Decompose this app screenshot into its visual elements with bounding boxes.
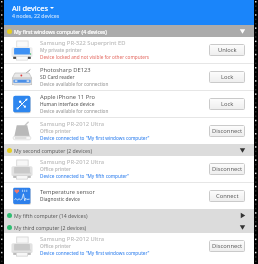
staticText: Photosharp DE123 [40,66,91,74]
staticText: My fifth computer (14 devices) [14,212,88,219]
button[interactable]: Photosharp DE123 [0,64,258,90]
staticText: Lock [221,100,234,108]
button[interactable]: Samsung PR-2012 Ultra [0,233,258,259]
staticText: Apple iPhone 11 Pro [40,93,95,101]
staticText: Office printer [40,166,71,173]
staticText: Diagnostic device [40,196,81,203]
staticText: Disconnect [212,165,243,173]
staticText: Disconnect [212,127,243,135]
button[interactable]: My first windows computer (4 devices) [0,25,258,37]
staticText: Temperature sensor [40,188,95,196]
staticText: Lock [221,73,234,81]
staticText: Samsung PR-322 Superprint ED [40,39,126,47]
button[interactable]: Disconnect [209,125,245,137]
button[interactable]: My third computer (2 devices) [0,221,258,233]
staticText: All devices [12,3,48,13]
staticText: Device available for connection [40,108,109,114]
staticText: Unlock [218,46,237,54]
button[interactable]: Apple iPhone 11 Pro [0,91,258,117]
staticText: Disconnect [212,242,243,250]
button[interactable]: My fifth computer (14 devices) [0,209,258,221]
staticText: Device connected to "My first windows co… [40,250,150,256]
staticText: Device locked and not visible for other … [40,54,150,60]
staticText: Device connected to "My first windows co… [40,135,150,141]
button[interactable]: My second computer (2 devices) [0,144,258,156]
button[interactable]: Lock [209,71,245,83]
staticText: My second computer (2 devices) [14,147,92,154]
staticText: Office printer [40,128,71,135]
button[interactable]: Disconnect [209,240,245,252]
button[interactable]: Samsung PR-2012 Ultra [0,118,258,144]
staticText: Samsung PR-2012 Ultra [40,120,104,128]
button[interactable]: Samsung PR-2012 Ultra [0,156,258,182]
staticText: Human interface device [40,101,95,108]
staticText: My private printer [40,47,82,54]
button[interactable]: Connect [209,190,245,202]
staticText: SD Card reader [40,74,75,81]
button[interactable]: Samsung PR-322 Superprint ED [0,37,258,63]
staticText: 4 nodes, 22 devices [12,12,60,19]
button[interactable]: Temperature sensor [0,183,258,209]
staticText: Device available for connection [40,81,109,87]
staticText: Device connected to "My fifth computer" [40,173,130,179]
button[interactable]: Lock [209,98,245,110]
staticText: My first windows computer (4 devices) [14,28,107,35]
staticText: Samsung PR-2012 Ultra [40,158,104,166]
staticText: Connect [216,192,239,200]
staticText: Samsung PR-2012 Ultra [40,235,104,243]
button[interactable]: Disconnect [209,163,245,175]
staticText: My third computer (2 devices) [14,224,87,231]
staticText: Office printer [40,243,71,250]
button[interactable]: Unlock [209,44,245,56]
